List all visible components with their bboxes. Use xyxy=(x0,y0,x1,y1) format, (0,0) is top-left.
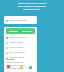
button[interactable]: search your topic xyxy=(4,16,37,24)
button[interactable]: Basic plan xyxy=(7,65,10,68)
staticText: Monthly report xyxy=(9,56,25,59)
staticText: and progress consistently xyxy=(18,5,46,8)
button[interactable]: Pro plan xyxy=(20,66,23,69)
button[interactable]: Upgrade xyxy=(6,28,35,34)
staticText: works for your goals xyxy=(6,64,26,67)
staticText: every single day xyxy=(23,8,41,11)
staticText: search your topic xyxy=(9,19,27,22)
staticText: Master every tool in depth xyxy=(18,2,47,5)
button[interactable]: Practice daily xyxy=(6,40,37,45)
button[interactable]: Beginner course xyxy=(6,35,37,40)
staticText: Track progress xyxy=(9,46,25,49)
staticText: choose a plan that xyxy=(6,61,24,64)
staticText: and budget today xyxy=(6,67,23,70)
button[interactable]: Track progress xyxy=(6,45,37,50)
button[interactable]: Team plan xyxy=(29,66,32,69)
staticText: Practice daily xyxy=(9,41,23,44)
staticText: Beginner course xyxy=(9,36,26,39)
button[interactable]: Monthly report xyxy=(6,55,37,60)
staticText: plan now xyxy=(22,30,32,33)
staticText: Pricing xyxy=(6,57,15,60)
button[interactable]: Join community xyxy=(6,50,37,55)
staticText: Join community xyxy=(9,51,26,54)
staticText: Upgrade xyxy=(9,30,19,33)
